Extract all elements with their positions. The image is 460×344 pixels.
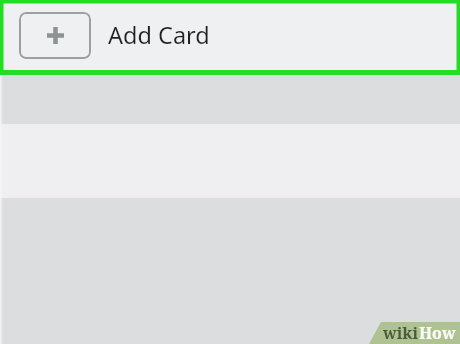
staticText: How [419, 322, 456, 343]
staticText: wiki [383, 322, 419, 343]
button[interactable]: Add a card [0, 0, 460, 75]
staticText: Add Card [108, 19, 210, 51]
button[interactable]: Add a card [19, 12, 91, 59]
